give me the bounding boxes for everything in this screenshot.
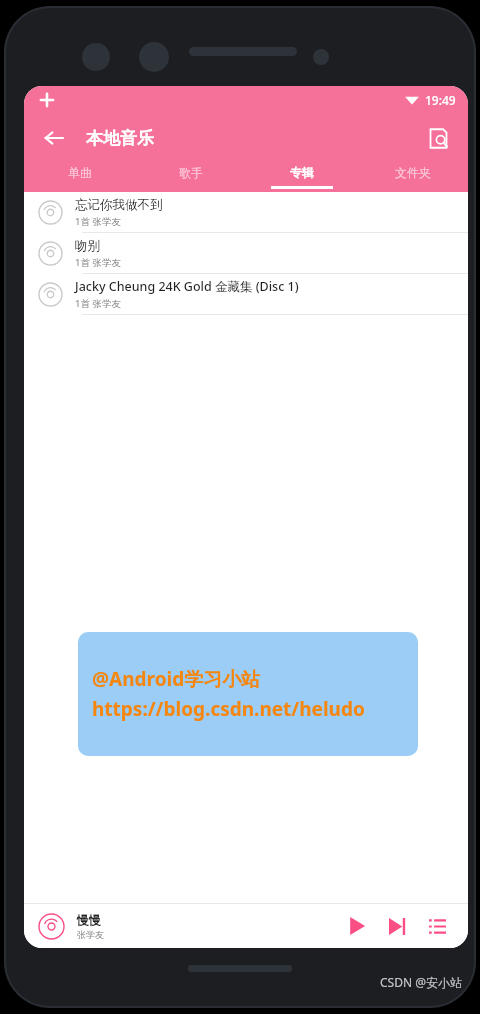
- staticText: 歌手: [179, 165, 203, 180]
- button[interactable]: Playlist: [420, 909, 454, 943]
- button[interactable]: 单曲: [24, 162, 135, 192]
- staticText: https://blog.csdn.net/heludo: [92, 696, 365, 722]
- staticText: 专辑: [290, 165, 314, 180]
- staticText: @Android学习小站: [92, 666, 261, 692]
- button[interactable]: Search: [418, 118, 458, 158]
- button[interactable]: 专辑: [246, 162, 357, 192]
- staticText: 19:49: [425, 92, 456, 108]
- button[interactable]: Back: [34, 118, 74, 158]
- staticText: CSDN @安小站: [380, 974, 462, 990]
- button[interactable]: Next: [380, 909, 414, 943]
- button[interactable]: Now playing: [38, 913, 65, 940]
- staticText: 文件夹: [395, 165, 431, 180]
- staticText: 本地音乐: [86, 128, 154, 149]
- staticText: 单曲: [68, 165, 92, 180]
- staticText: 张学友: [77, 929, 104, 940]
- staticText: Jacky Cheung 24K Gold 金藏集 (Disc 1): [75, 278, 299, 295]
- staticText: 1首 张学友: [75, 256, 121, 269]
- button[interactable]: Jacky Cheung 24K Gold 金藏集 (Disc 1): [24, 274, 468, 315]
- button[interactable]: Play: [340, 909, 374, 943]
- button[interactable]: 文件夹: [357, 162, 468, 192]
- staticText: 1首 张学友: [75, 215, 121, 228]
- button[interactable]: 歌手: [135, 162, 246, 192]
- button[interactable]: Add: [38, 91, 56, 109]
- staticText: 忘记你我做不到: [75, 197, 163, 213]
- button[interactable]: 吻别: [24, 233, 468, 274]
- staticText: 吻别: [75, 238, 100, 254]
- staticText: 1首 张学友: [75, 297, 121, 310]
- button[interactable]: 忘记你我做不到: [24, 192, 468, 233]
- staticText: 慢慢: [77, 912, 101, 927]
